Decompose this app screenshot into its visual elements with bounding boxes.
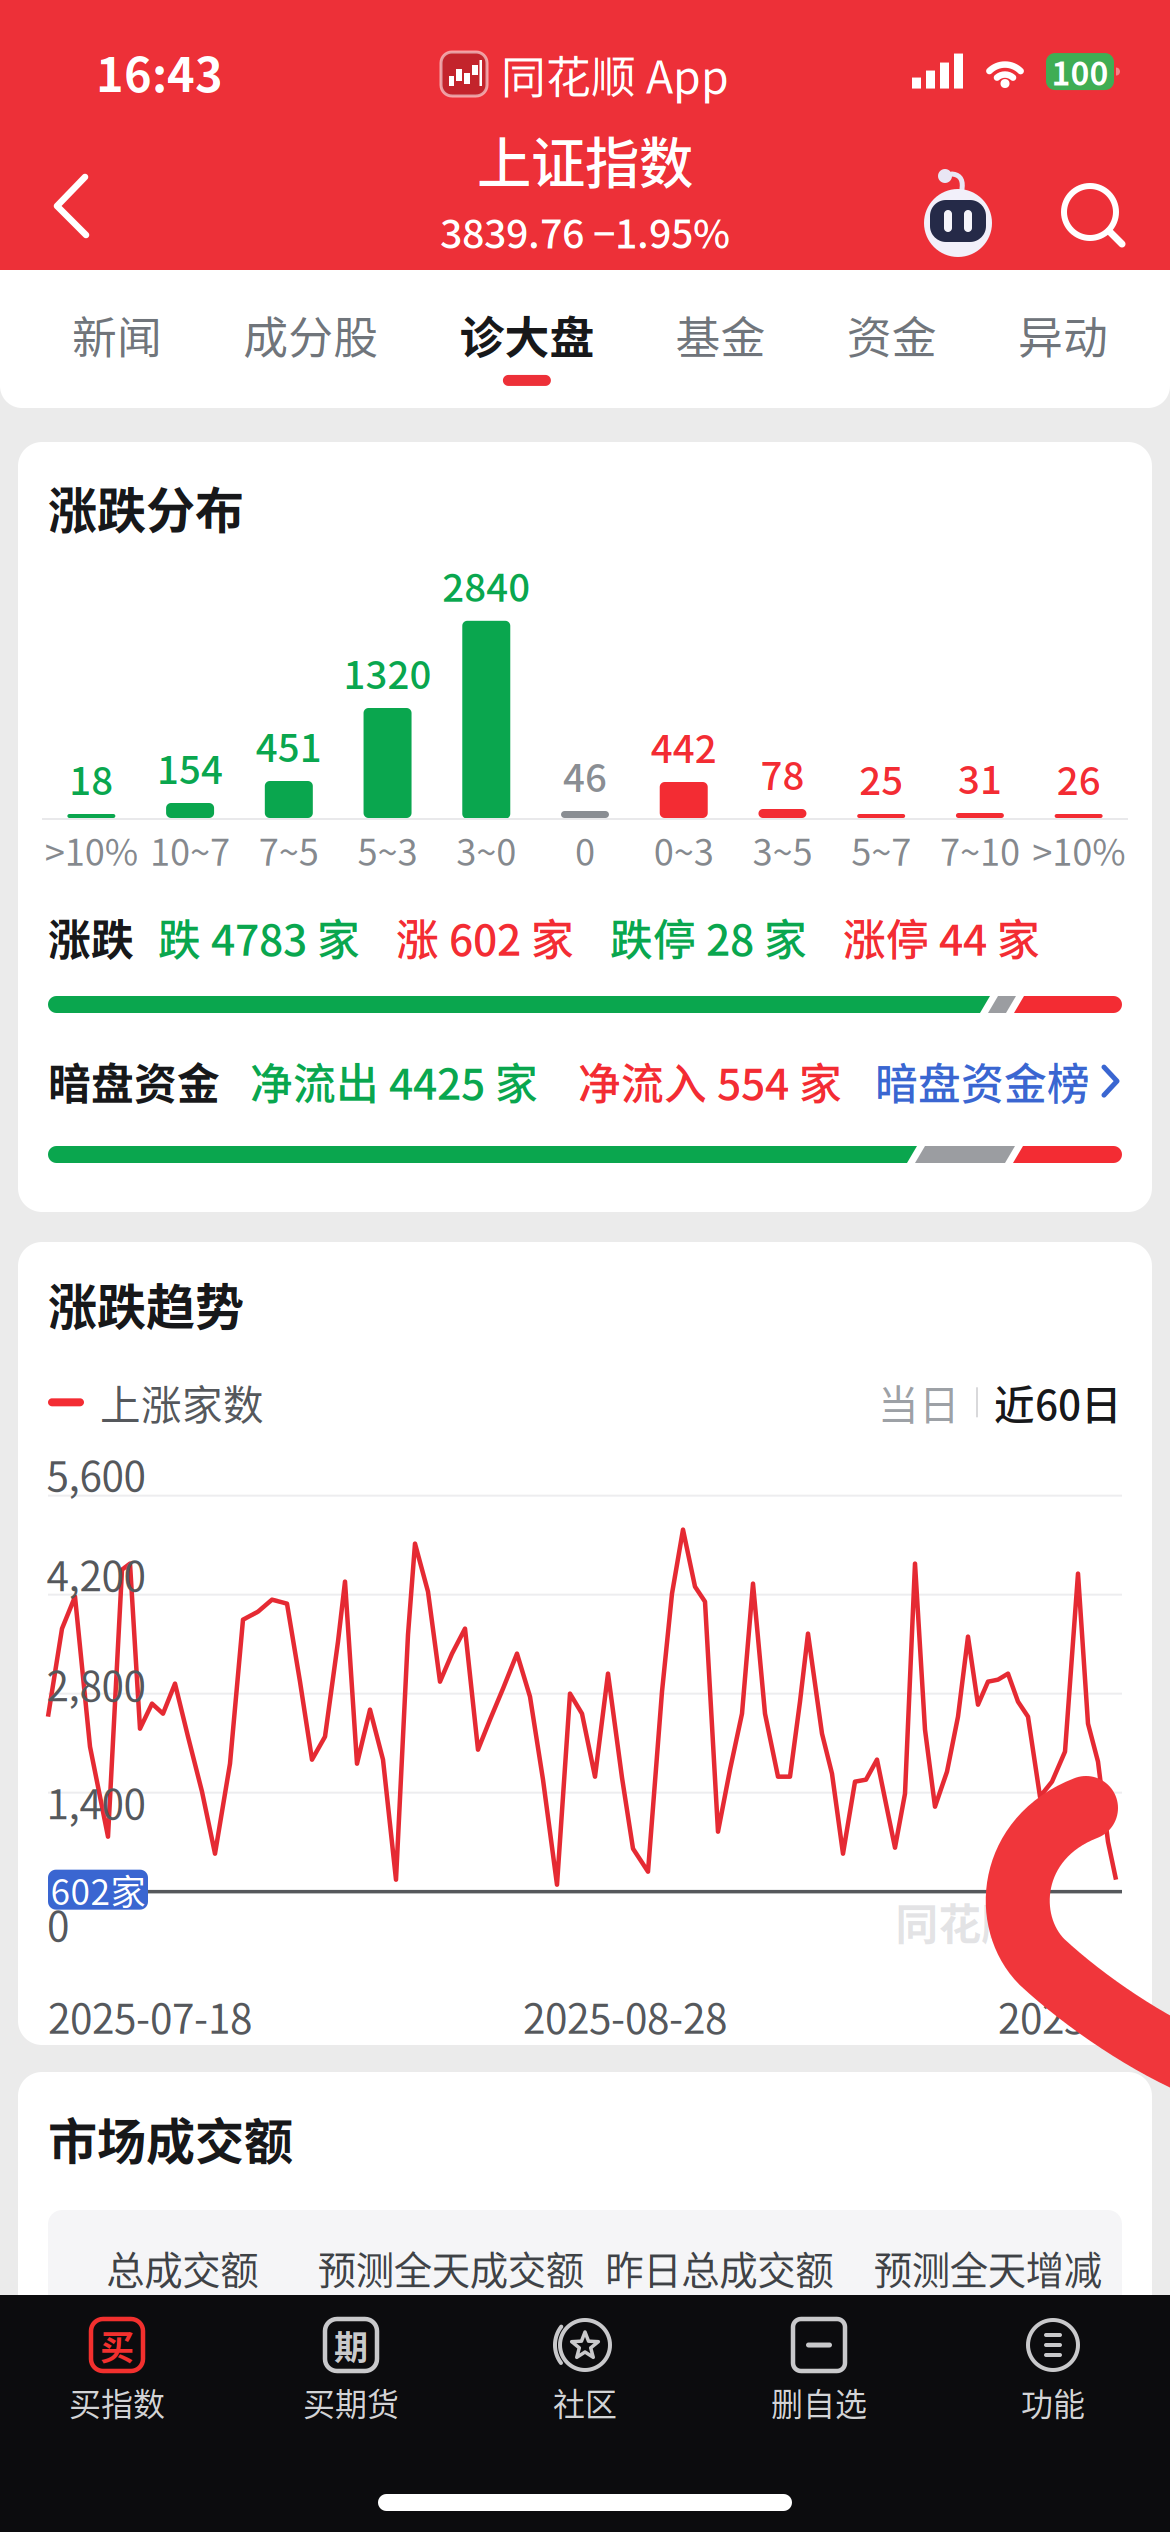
staticText: 总成交额 <box>106 2240 258 2296</box>
staticText: 资金 <box>847 302 937 367</box>
staticText: 涨跌趋势 <box>48 1268 244 1339</box>
staticText: 0~3 <box>654 824 714 876</box>
staticText: 市场成交额 <box>48 2102 293 2173</box>
button[interactable]: 成分股 <box>243 302 378 386</box>
staticText: 154 <box>157 739 223 795</box>
staticText: 新闻 <box>72 302 162 367</box>
staticText: 46 <box>563 747 607 803</box>
staticText: 同花顺 App <box>501 42 729 106</box>
staticText: 暗盘资金 <box>48 1050 220 1112</box>
button[interactable]: 功能 <box>936 2317 1170 2425</box>
staticText: 3~0 <box>456 824 516 876</box>
staticText: 31 <box>958 749 1002 805</box>
staticText: >10% <box>45 824 138 876</box>
staticText: 602家 <box>50 1864 145 1915</box>
staticText: 7~10 <box>940 824 1020 876</box>
staticText: 7~5 <box>259 824 319 876</box>
button[interactable]: 资金 <box>847 302 937 386</box>
staticText: 跌停 28 家 <box>610 906 807 968</box>
staticText: 2,800 <box>46 1654 145 1713</box>
staticText: 5~7 <box>851 824 911 876</box>
staticText: 社区 <box>553 2379 617 2425</box>
staticText: 预测全天成交额 <box>318 2240 584 2296</box>
staticText: 净流出 4425 家 <box>250 1050 538 1112</box>
staticText: 451 <box>256 717 322 773</box>
staticText: 成分股 <box>243 302 378 367</box>
staticText: 2025-1 <box>998 1987 1122 2045</box>
button[interactable]: 期 <box>234 2317 468 2425</box>
staticText: 净流入 554 家 <box>578 1050 842 1112</box>
staticText: 预测全天增减 <box>874 2240 1102 2296</box>
button[interactable]: 异动 <box>1018 302 1108 386</box>
button[interactable]: 社区 <box>468 2317 702 2425</box>
staticText: 基金 <box>676 302 766 367</box>
button[interactable]: 诊大盘 <box>459 302 594 386</box>
staticText: 涨停 44 家 <box>843 906 1040 968</box>
staticText: 买 <box>100 2320 134 2370</box>
button[interactable]: AI助手 <box>918 113 998 265</box>
staticText: 442 <box>651 718 717 774</box>
button[interactable]: 返回 <box>0 108 120 270</box>
button[interactable]: 暗盘资金榜 <box>875 1050 1122 1112</box>
staticText: 1320 <box>343 644 431 700</box>
staticText: 26 <box>1057 750 1101 806</box>
staticText: 16:43 <box>96 38 223 106</box>
staticText: 删自选 <box>771 2379 867 2425</box>
button[interactable]: 近60日 <box>994 1373 1122 1432</box>
staticText: 3839.76 −1.95% <box>440 203 730 260</box>
button[interactable]: 买 <box>0 2317 234 2425</box>
staticText: 期 <box>334 2320 368 2370</box>
staticText: 2840 <box>442 557 530 613</box>
staticText: 25 <box>859 750 903 806</box>
staticText: 当日 <box>878 1373 960 1432</box>
staticText: 5~3 <box>357 824 417 876</box>
button[interactable]: 搜索 <box>1050 114 1170 264</box>
staticText: 昨日总成交额 <box>605 2240 833 2296</box>
staticText: 诊大盘 <box>459 302 594 367</box>
button[interactable]: 新闻 <box>72 302 162 386</box>
staticText: 暗盘资金榜 <box>875 1050 1090 1112</box>
staticText: 涨 602 家 <box>396 906 574 968</box>
staticText: 10~7 <box>150 824 230 876</box>
staticText: 买期货 <box>303 2379 399 2425</box>
staticText: 近60日 <box>994 1373 1122 1432</box>
staticText: >10% <box>1032 824 1125 876</box>
staticText: 2025-08-28 <box>523 1987 727 2045</box>
staticText: 功能 <box>1021 2379 1085 2425</box>
staticText: 异动 <box>1018 302 1108 367</box>
staticText: 上证指数 <box>477 120 693 199</box>
staticText: 0 <box>575 824 595 876</box>
staticText: 4,200 <box>46 1544 145 1603</box>
staticText: 18 <box>69 750 113 806</box>
staticText: 0 <box>47 1894 69 1953</box>
staticText: 上涨家数 <box>100 1373 264 1432</box>
staticText: 2025-07-18 <box>48 1987 252 2045</box>
staticText: 78 <box>760 745 804 801</box>
button[interactable]: 删自选 <box>702 2317 936 2425</box>
staticText: 跌 4783 家 <box>158 906 360 968</box>
button[interactable]: 当日 <box>878 1373 960 1432</box>
staticText: 涨跌 <box>48 906 134 968</box>
staticText: 100 <box>1051 48 1108 95</box>
staticText: 同花顺 <box>895 1891 1024 1953</box>
staticText: 买指数 <box>69 2379 165 2425</box>
staticText: 3~5 <box>752 824 812 876</box>
staticText: 1,400 <box>46 1772 145 1831</box>
staticText: 5,600 <box>46 1444 145 1503</box>
staticText: 涨跌分布 <box>48 471 244 542</box>
button[interactable]: 基金 <box>676 302 766 386</box>
